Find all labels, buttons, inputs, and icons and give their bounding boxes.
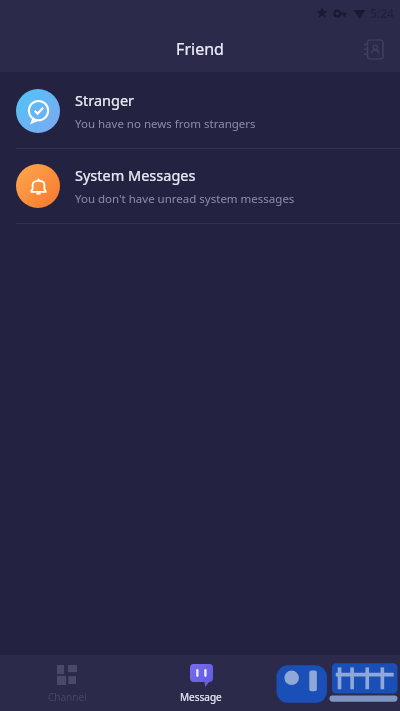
staticText: You don't have unread system messages <box>75 191 295 207</box>
staticText: Channel <box>48 690 87 704</box>
staticText: 5:24 <box>370 5 394 21</box>
staticText: You have no news from strangers <box>75 116 256 132</box>
button[interactable]: Contacts <box>356 32 390 66</box>
button[interactable]: Stranger <box>0 74 400 148</box>
staticText: Stranger <box>75 90 135 110</box>
button[interactable]: Message <box>134 655 267 711</box>
button[interactable]: System Messages <box>0 149 400 223</box>
staticText: Friend <box>176 38 224 60</box>
staticText: System Messages <box>75 165 196 185</box>
button[interactable]: Channel <box>0 655 134 711</box>
staticText: Message <box>180 690 222 704</box>
